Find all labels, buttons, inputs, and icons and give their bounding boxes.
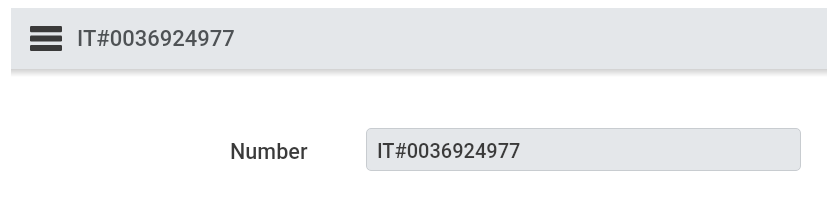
staticText: IT#0036924977: [377, 139, 521, 162]
staticText: IT#0036924977: [77, 26, 235, 52]
button[interactable]: Open navigation menu: [30, 26, 62, 51]
staticText: Number: [230, 139, 308, 164]
button[interactable]: IT#0036924977: [366, 128, 801, 171]
